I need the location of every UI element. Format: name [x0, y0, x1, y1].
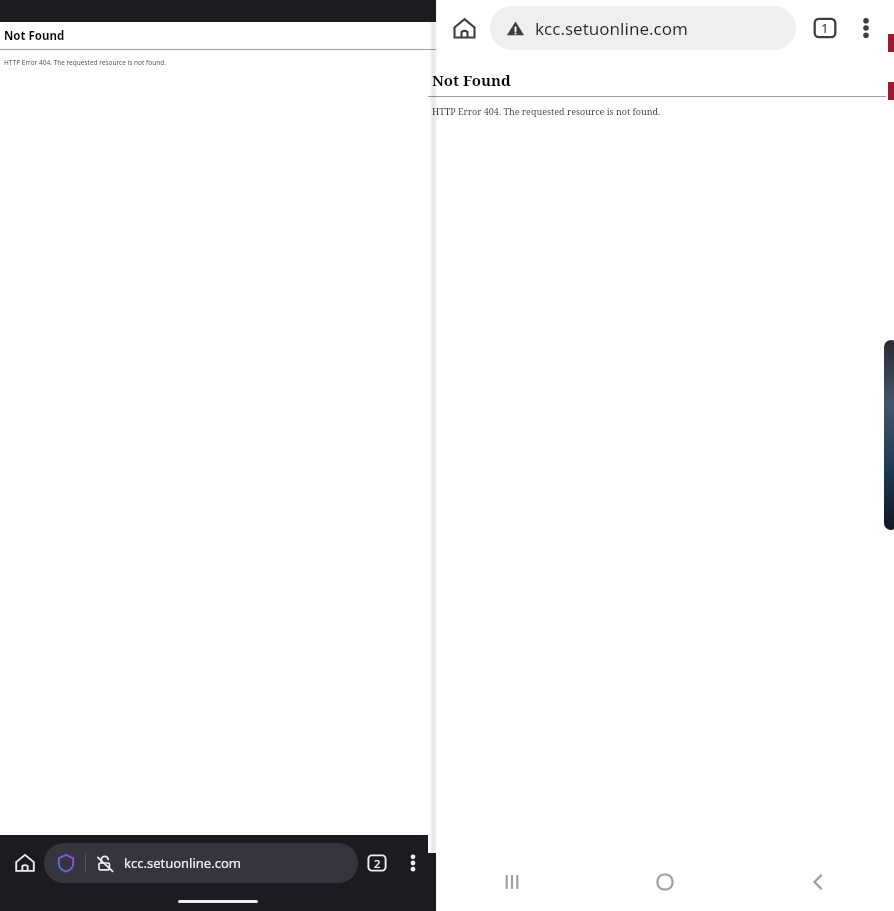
button[interactable]: kcc.setuonline.com [44, 843, 358, 883]
staticText: 2 [374, 856, 381, 871]
button[interactable]: Tabs, 1 open [804, 7, 846, 49]
button[interactable]: Home [588, 853, 741, 911]
button[interactable]: Recent apps [436, 853, 588, 911]
staticText: HTTP Error 404. The requested resource i… [4, 58, 166, 67]
button[interactable]: More options [396, 846, 430, 880]
button[interactable]: Home [6, 844, 44, 882]
staticText: kcc.setuonline.com [535, 17, 688, 40]
staticText: 1 [821, 19, 829, 37]
button[interactable]: kcc.setuonline.com [490, 6, 796, 50]
staticText: Not Found [4, 28, 65, 44]
staticText: Not Found [432, 70, 511, 90]
button[interactable]: Home [444, 8, 484, 48]
button[interactable]: Tabs, 2 open [358, 844, 396, 882]
button[interactable]: Back [741, 853, 894, 911]
staticText: HTTP Error 404. The requested resource i… [432, 105, 661, 117]
button[interactable]: More options [846, 8, 886, 48]
staticText: kcc.setuonline.com [124, 854, 241, 872]
